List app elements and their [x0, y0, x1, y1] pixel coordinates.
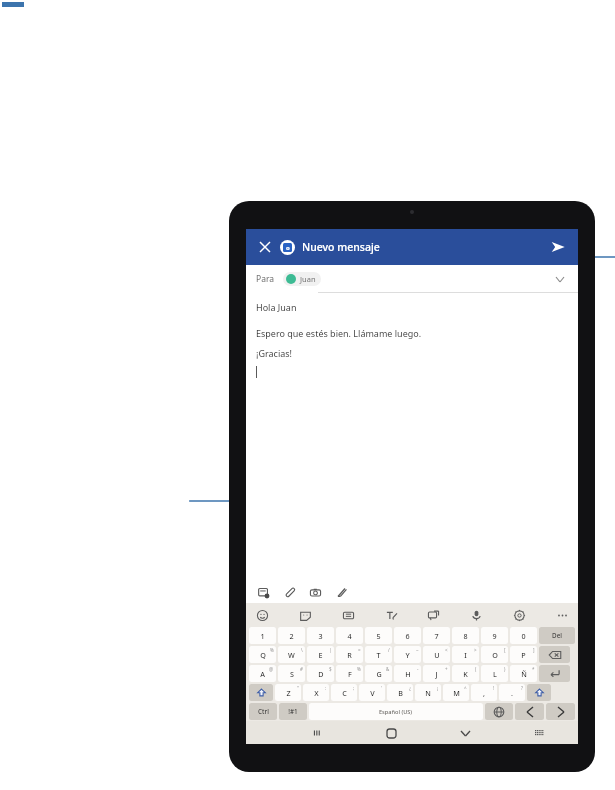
staticText: U: [434, 650, 440, 660]
staticText: 0: [521, 631, 526, 641]
staticText: G: [376, 669, 382, 679]
staticText: ': [381, 685, 383, 691]
button[interactable]: K: [452, 665, 479, 682]
staticText: #: [300, 666, 303, 672]
staticText: o: [286, 244, 290, 252]
button[interactable]: C: [331, 684, 357, 701]
button[interactable]: A: [249, 665, 276, 682]
button[interactable]: W: [278, 646, 305, 663]
button[interactable]: Backspace: [539, 646, 570, 663]
button[interactable]: D: [307, 665, 334, 682]
button[interactable]: Enter: [539, 665, 570, 682]
button[interactable]: Y: [394, 646, 421, 663]
staticText: Espero que estés bien. Llámame luego.: [256, 327, 422, 339]
staticText: \: [301, 647, 303, 653]
button[interactable]: Cambiar idioma: [485, 703, 513, 720]
button[interactable]: M: [443, 684, 469, 701]
staticText: 3: [318, 631, 323, 641]
button[interactable]: Inicio: [381, 723, 401, 743]
button[interactable]: Configuración: [508, 604, 530, 626]
button[interactable]: X: [303, 684, 329, 701]
button[interactable]: Recientes: [307, 723, 327, 743]
button[interactable]: Más opciones: [551, 604, 573, 626]
staticText: 2: [289, 631, 294, 641]
button[interactable]: Ctrl: [249, 703, 277, 720]
staticText: Hola Juan: [256, 301, 297, 313]
button[interactable]: V: [359, 684, 385, 701]
button[interactable]: N: [415, 684, 441, 701]
button[interactable]: G: [365, 665, 392, 682]
button[interactable]: Expandir: [552, 271, 568, 287]
button[interactable]: E: [307, 646, 334, 663]
button[interactable]: J: [423, 665, 450, 682]
button[interactable]: Del: [539, 627, 575, 644]
staticText: A: [260, 669, 265, 679]
button[interactable]: O: [481, 646, 508, 663]
button[interactable]: Dictado por voz: [465, 604, 487, 626]
button[interactable]: Traducir: [422, 604, 444, 626]
button[interactable]: 3: [307, 627, 334, 644]
button[interactable]: Emoji: [251, 604, 273, 626]
button[interactable]: .: [499, 684, 525, 701]
button[interactable]: I: [452, 646, 479, 663]
button[interactable]: Cámara: [305, 582, 325, 602]
button[interactable]: Z: [275, 684, 301, 701]
button[interactable]: Stickers: [294, 604, 316, 626]
button[interactable]: 5: [365, 627, 392, 644]
button[interactable]: !#1: [279, 703, 307, 720]
button[interactable]: Español (US): [309, 703, 483, 720]
staticText: 1: [260, 631, 265, 641]
button[interactable]: Escritura manual: [380, 604, 402, 626]
staticText: F: [348, 669, 352, 679]
button[interactable]: 7: [423, 627, 450, 644]
staticText: X: [314, 688, 319, 698]
button[interactable]: ,: [471, 684, 497, 701]
button[interactable]: Ocultar teclado: [455, 723, 475, 743]
staticText: 4: [347, 631, 352, 641]
button[interactable]: Cerrar: [255, 237, 275, 257]
button[interactable]: P: [510, 646, 537, 663]
button[interactable]: 0: [510, 627, 537, 644]
button[interactable]: Teclado: [529, 723, 549, 743]
button[interactable]: B: [387, 684, 413, 701]
staticText: ¡: [437, 685, 439, 691]
button[interactable]: Q: [249, 646, 276, 663]
button[interactable]: U: [423, 646, 450, 663]
staticText: ): [504, 666, 506, 672]
button[interactable]: 4: [336, 627, 363, 644]
button[interactable]: 8: [452, 627, 479, 644]
button[interactable]: S: [278, 665, 305, 682]
button[interactable]: 1: [249, 627, 276, 644]
button[interactable]: F: [336, 665, 363, 682]
button[interactable]: Anterior: [515, 703, 544, 720]
button[interactable]: 9: [481, 627, 508, 644]
button[interactable]: T: [365, 646, 392, 663]
staticText: ?: [521, 685, 523, 691]
staticText: T: [376, 650, 381, 660]
button[interactable]: R: [336, 646, 363, 663]
button[interactable]: H: [394, 665, 421, 682]
staticText: [: [504, 647, 506, 653]
button[interactable]: Ñ: [510, 665, 537, 682]
button[interactable]: Insertar archivo: [253, 582, 273, 602]
staticText: !#1: [288, 707, 298, 716]
button[interactable]: Enviar: [547, 236, 569, 258]
staticText: E: [318, 650, 323, 660]
button[interactable]: Shift: [527, 684, 551, 701]
button[interactable]: Siguiente: [546, 703, 575, 720]
staticText: &: [386, 666, 390, 672]
staticText: Ctrl: [258, 707, 269, 716]
button[interactable]: Adjuntar: [279, 582, 299, 602]
staticText: B: [398, 688, 403, 698]
button[interactable]: 2: [278, 627, 305, 644]
staticText: ~: [416, 647, 419, 653]
button[interactable]: Shift: [249, 684, 273, 701]
staticText: !: [493, 685, 495, 691]
button[interactable]: 6: [394, 627, 421, 644]
button[interactable]: Juan: [283, 272, 321, 286]
staticText: =: [358, 647, 361, 653]
button[interactable]: GIF: [337, 604, 359, 626]
staticText: /: [388, 647, 390, 653]
button[interactable]: L: [481, 665, 508, 682]
button[interactable]: Dibujar: [331, 582, 351, 602]
